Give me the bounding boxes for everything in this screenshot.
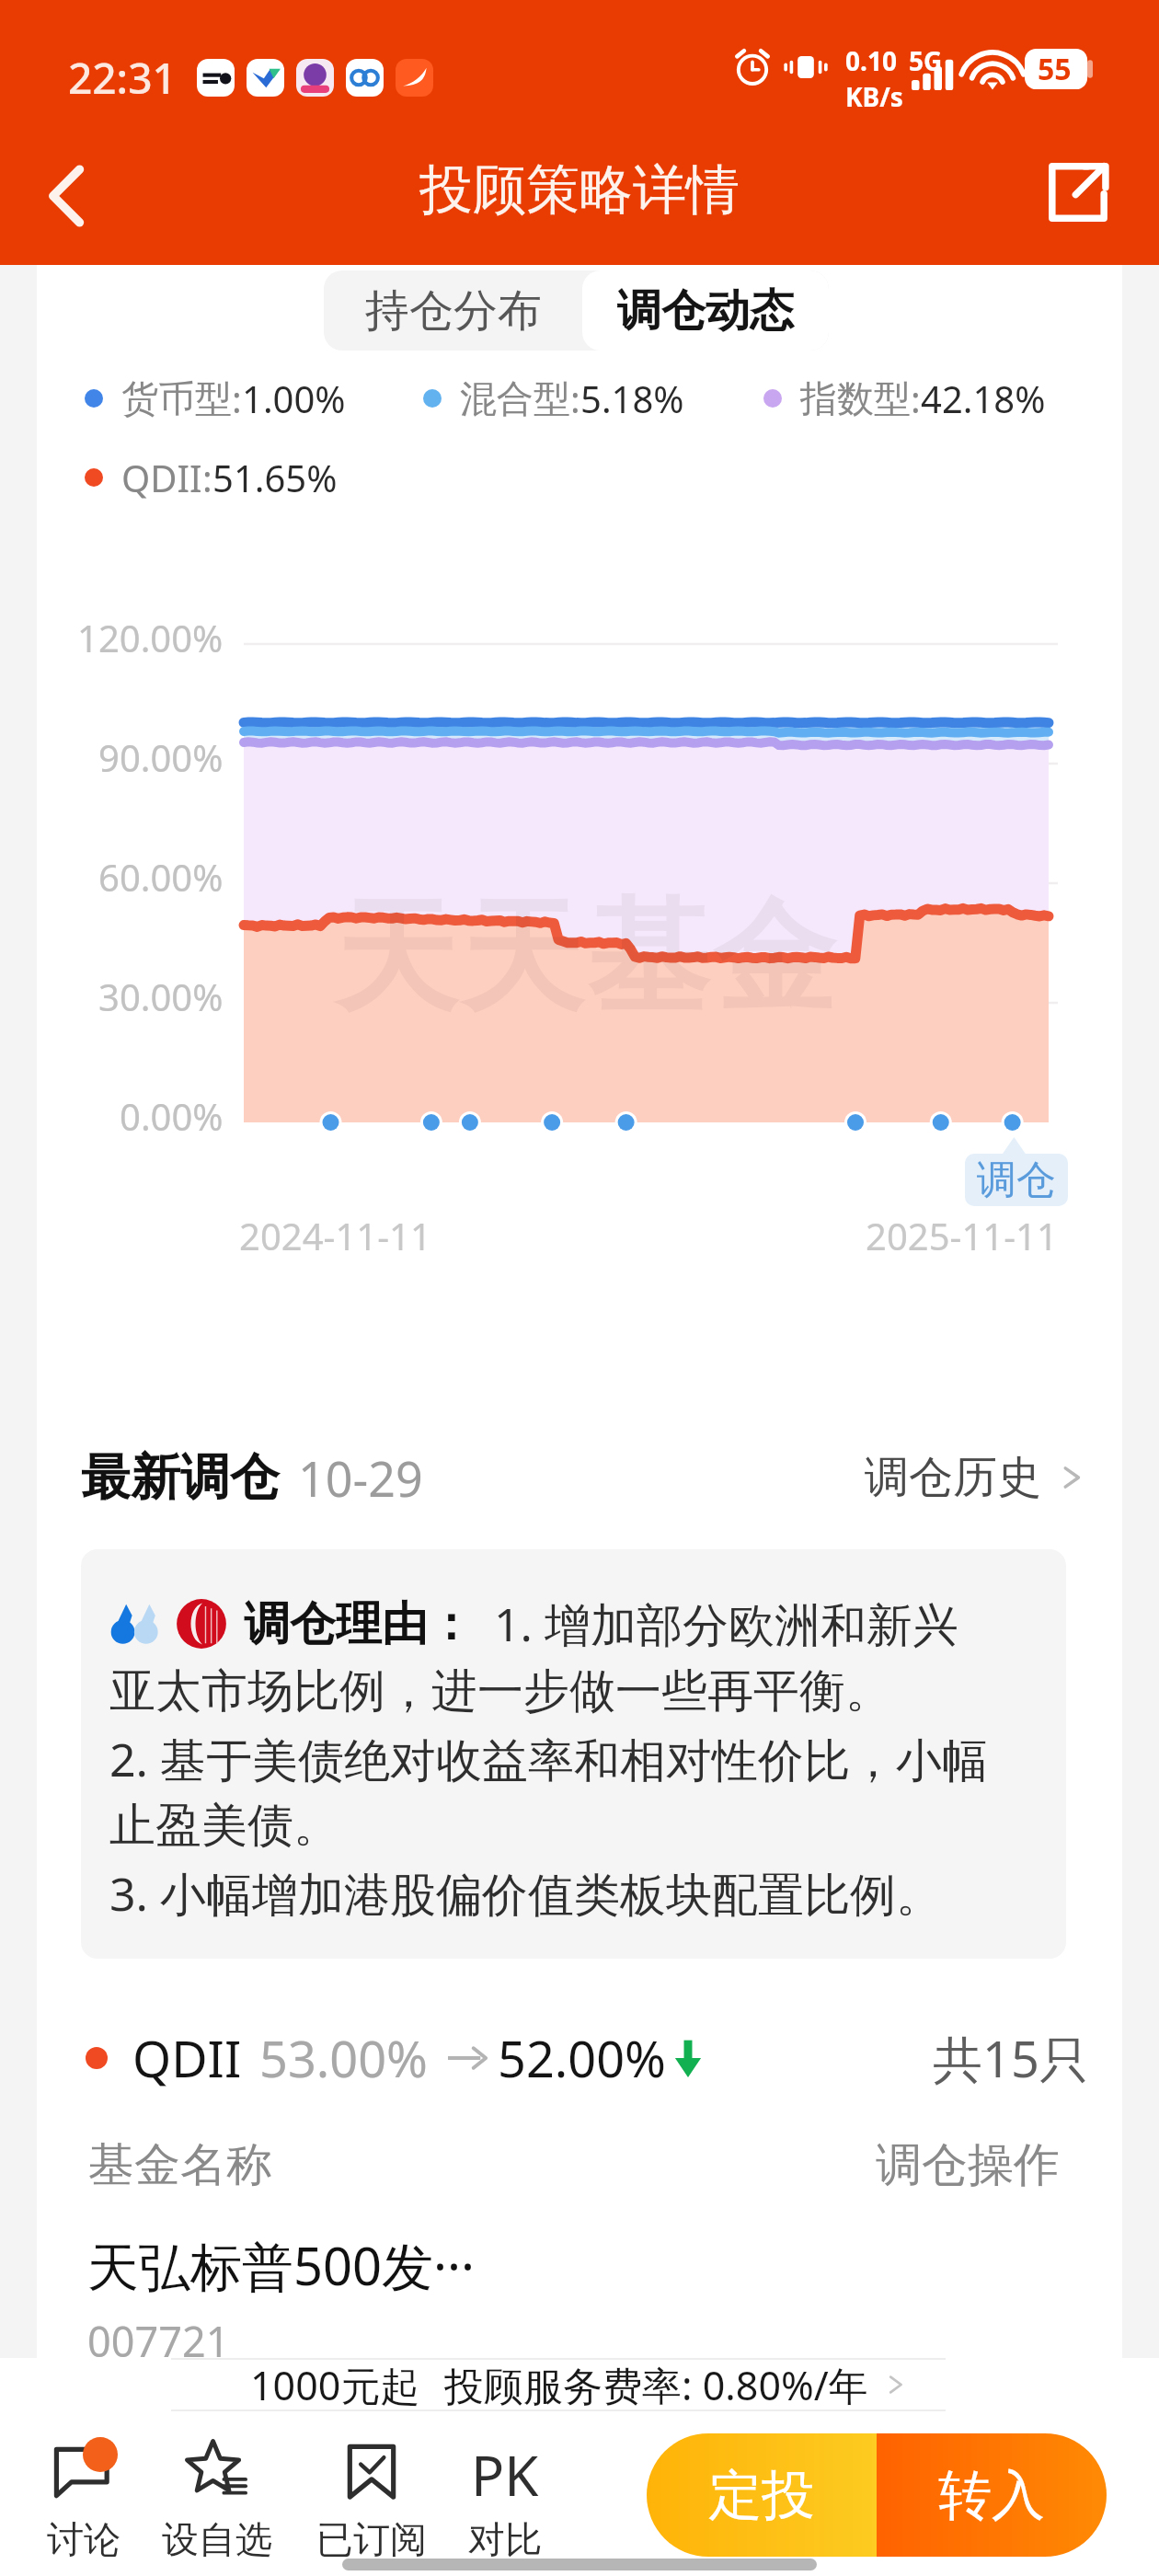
staticText: 60.00% [98,852,224,902]
staticText: 天弘标普500发··· [87,2230,476,2300]
staticText: 22:31 [68,49,177,107]
staticText: : [202,453,212,502]
staticText: 亚太市场比例，进一步做一些再平衡。 [109,1662,891,1720]
staticText: 0.10 [845,43,897,78]
staticText: 调仓 [977,1156,1056,1205]
staticText: 货币型 [121,375,232,421]
staticText: KB/s [845,79,903,114]
staticText: 1. 增加部分欧洲和新兴 [494,1593,958,1655]
staticText: 最新调仓 [81,1446,280,1509]
staticText: 30.00% [98,972,224,1021]
staticText: 调仓动态 [617,283,794,339]
staticText: 调仓操作 [876,2136,1060,2194]
staticText: 52.00% [498,2024,666,2092]
staticText: 设自选 [162,2516,272,2562]
staticText: 90.00% [98,732,224,782]
staticText: 42.18% [921,374,1046,423]
staticText: 0.00% [120,1091,224,1141]
staticText: 天天基金 [333,881,837,1036]
staticText: 2. 基于美债绝对收益率和相对性价比，小幅 [109,1728,988,1790]
button[interactable]: Back [25,152,113,240]
staticText: 止盈美债。 [109,1797,339,1855]
staticText: : [232,374,242,423]
button[interactable]: 转入 [877,2433,1107,2557]
staticText: 5.18% [580,374,684,423]
staticText: 10-29 [298,1445,423,1511]
staticText: 调仓历史 [865,1450,1041,1505]
button[interactable]: 调仓动态 [582,270,829,351]
staticText: QDII [132,2024,242,2092]
staticText: 基金名称 [88,2136,272,2194]
button[interactable]: 定投 [647,2433,877,2557]
staticText: 51.65% [212,453,338,502]
button[interactable]: 持仓分布 [324,270,582,351]
staticText: 转入 [938,2462,1045,2529]
staticText: 53.00% [259,2024,428,2092]
button[interactable]: 调仓历史 [865,1450,1087,1505]
staticText: QDII [121,453,202,502]
staticText: 1000元起 [250,2358,420,2411]
staticText: 3. 小幅增加港股偏价值类板块配置比例。 [109,1862,942,1925]
staticText: 1.00% [242,374,346,423]
button[interactable]: PK [429,2437,581,2562]
staticText: 投顾策略详情 [419,156,740,224]
button[interactable]: 已订阅 [295,2437,448,2562]
staticText: 2024-11-11 [239,1211,431,1260]
staticText: 持仓分布 [365,283,542,339]
staticText: PK [471,2437,539,2505]
staticText: 定投 [708,2462,815,2529]
staticText: 调仓理由： [244,1595,474,1653]
staticText: 55 [1038,49,1072,89]
staticText: 对比 [468,2516,542,2562]
staticText: 2025-11-11 [866,1211,1058,1260]
staticText: 120.00% [77,613,224,662]
staticText: 已订阅 [316,2516,427,2562]
staticText: : [911,374,921,423]
staticText: 5G [909,43,943,78]
staticText: 指数型 [800,375,911,421]
staticText: 007721 [87,2313,230,2358]
staticText: 讨论 [47,2516,120,2562]
staticText: : [570,374,580,423]
button[interactable]: 设自选 [141,2437,293,2562]
staticText: 共15只 [933,2024,1089,2092]
staticText: 投顾服务费率: 0.80%/年 [444,2358,868,2411]
button[interactable]: 讨论 [7,2437,160,2562]
button[interactable]: 1000元起 [250,2358,909,2411]
staticText: 混合型 [460,375,570,421]
button[interactable]: Share [1038,152,1119,233]
